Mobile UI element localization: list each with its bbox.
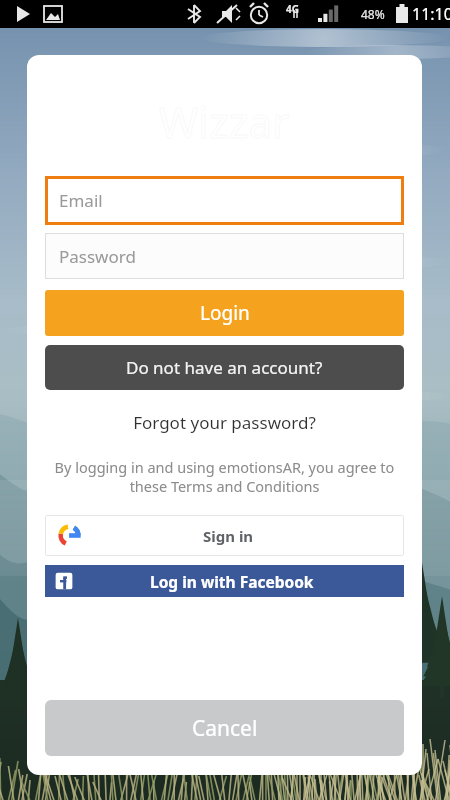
staticText: By logging in and using emotionsAR, you …	[45, 457, 404, 496]
button[interactable]: Login	[45, 290, 404, 336]
staticText: 11:10	[412, 3, 450, 25]
staticText: Cancel	[192, 714, 258, 743]
staticText: Do not have an account?	[126, 356, 323, 379]
other: Log in with Facebook	[53, 570, 75, 592]
staticText: Sign in	[203, 526, 254, 546]
staticText: 48%	[361, 6, 385, 22]
button[interactable]: Log in with Facebook	[45, 565, 404, 597]
staticText: Email	[59, 189, 103, 212]
button[interactable]: Forgot your password?	[45, 411, 404, 434]
button[interactable]: Sign in with Google	[45, 515, 404, 556]
staticText: Login	[200, 300, 250, 326]
button[interactable]: Do not have an account?	[45, 345, 404, 390]
other: Sign in with Google	[59, 525, 80, 546]
staticText: Forgot your password?	[133, 411, 316, 434]
staticText: Log in with Facebook	[150, 571, 314, 592]
staticText: Password	[59, 245, 136, 268]
button[interactable]: Email	[45, 176, 404, 225]
button[interactable]: Cancel	[45, 700, 404, 756]
button[interactable]: Password	[45, 233, 404, 279]
staticText: 4G	[286, 2, 299, 16]
